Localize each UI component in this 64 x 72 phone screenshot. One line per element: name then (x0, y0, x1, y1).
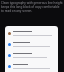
staticText: Clean typography with generous line heig… (1, 1, 63, 13)
button[interactable] (5, 28, 58, 39)
button[interactable] (5, 50, 58, 61)
button[interactable] (5, 61, 58, 72)
button[interactable] (5, 39, 58, 50)
